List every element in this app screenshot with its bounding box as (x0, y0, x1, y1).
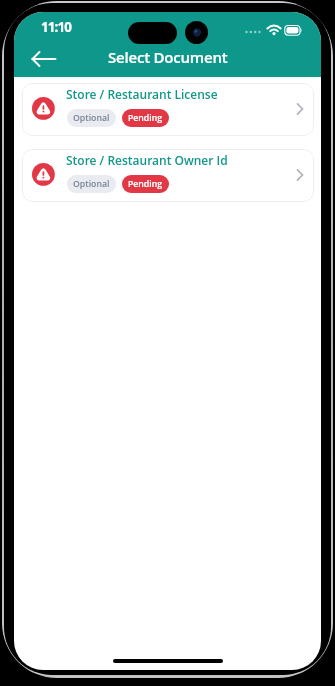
staticText: Store / Restaurant Owner Id (66, 152, 228, 168)
staticText: Optional (73, 112, 110, 124)
staticText: Store / Restaurant License (66, 86, 218, 102)
button[interactable] (28, 43, 60, 75)
staticText: Optional (73, 178, 110, 190)
staticText: Pending (128, 178, 163, 190)
button[interactable]: Store / Restaurant License (22, 83, 314, 136)
button[interactable]: Store / Restaurant Owner Id (22, 149, 314, 202)
staticText: 11:10 (41, 18, 71, 36)
staticText: Select Document (108, 47, 228, 67)
staticText: Pending (128, 112, 163, 124)
